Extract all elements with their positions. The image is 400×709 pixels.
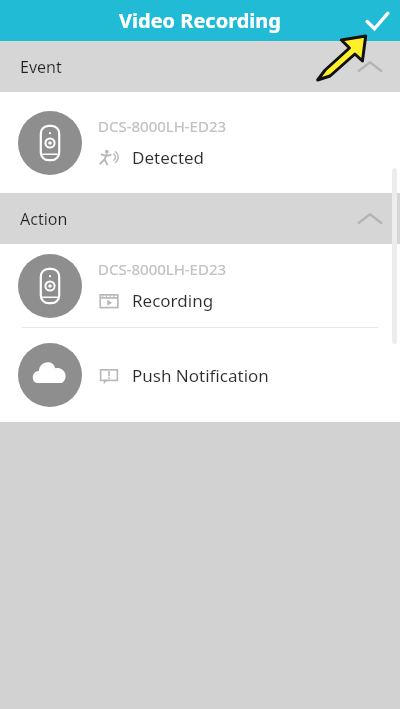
staticText: Video Recording [119,7,281,34]
staticText: DCS-8000LH-ED23 [98,259,227,279]
button[interactable]: Push Notification [0,328,400,422]
button[interactable]: DCS-8000LH-ED23 [0,244,400,327]
staticText: Detected [132,146,205,169]
staticText: Event [20,56,62,78]
staticText: Action [20,208,68,230]
button[interactable]: DCS-8000LH-ED23 [0,92,400,193]
button[interactable]: Confirm [354,0,400,41]
staticText: Recording [132,289,214,312]
button[interactable]: Action [0,193,400,244]
staticText: DCS-8000LH-ED23 [98,116,227,136]
staticText: Push Notification [132,364,269,387]
button[interactable]: Event [0,41,400,92]
